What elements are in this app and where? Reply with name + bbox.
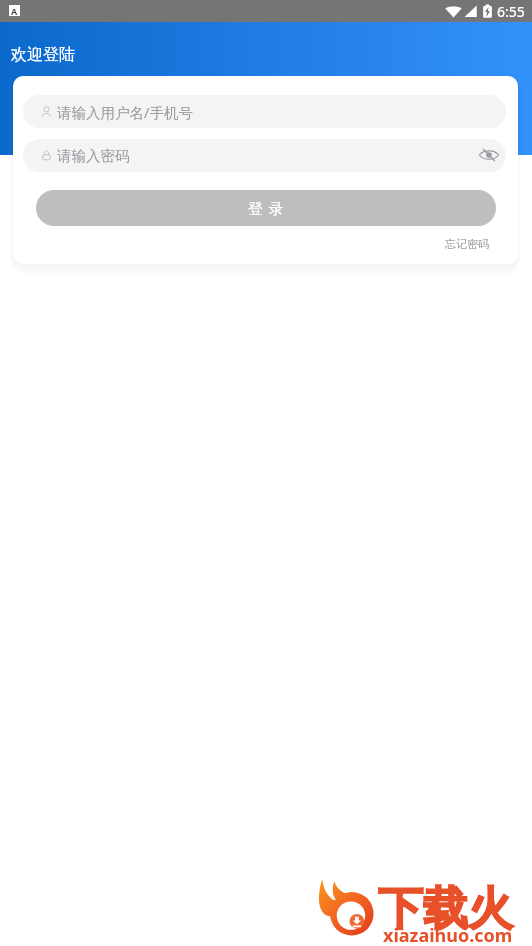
staticText: 欢迎登陆 [11, 45, 75, 65]
staticText: A [11, 5, 18, 16]
staticText: 登 录 [248, 198, 285, 218]
staticText: 请输入密码 [57, 147, 130, 165]
button[interactable]: Show password [476, 145, 502, 167]
staticText: 下载火 [378, 881, 513, 938]
staticText: xiazaihuo.com [383, 923, 513, 946]
button[interactable]: 请输入密码 [23, 139, 506, 172]
staticText: 忘记密码 [445, 237, 489, 251]
button[interactable]: 登 录 [36, 190, 496, 226]
staticText: 请输入用户名/手机号 [57, 102, 193, 122]
staticText: 6:55 [497, 2, 525, 21]
button[interactable]: 忘记密码 [439, 231, 495, 257]
button[interactable]: 请输入用户名/手机号 [23, 95, 506, 128]
